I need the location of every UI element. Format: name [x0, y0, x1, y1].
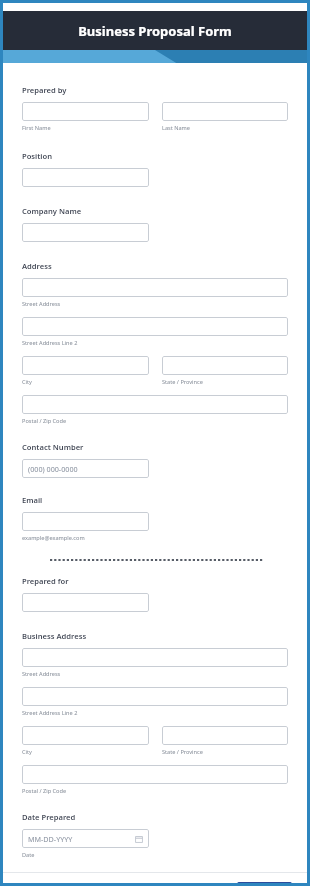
staticText: Address [22, 261, 52, 271]
staticText: State / Province [162, 378, 203, 386]
button[interactable] [22, 395, 288, 414]
staticText: First Name [22, 124, 51, 132]
button[interactable] [22, 648, 288, 667]
staticText: City [22, 748, 32, 756]
staticText: Date [22, 851, 35, 859]
staticText: Street Address [22, 670, 61, 678]
staticText: Last Name [162, 124, 190, 132]
staticText: Company Name [22, 206, 82, 216]
button[interactable] [22, 223, 149, 242]
button[interactable] [22, 168, 149, 187]
staticText: Position [22, 151, 53, 161]
staticText: example@example.com [22, 534, 85, 542]
button[interactable] [162, 356, 288, 375]
staticText: Email [22, 495, 43, 505]
button[interactable] [22, 593, 149, 612]
staticText: Postal / Zip Code [22, 787, 67, 795]
staticText: Next [254, 882, 275, 886]
staticText: (000) 000-0000 [28, 464, 78, 474]
staticText: Business Address [22, 631, 87, 641]
button[interactable]: MM-DD-YYYY [22, 829, 149, 848]
button[interactable]: (000) 000-0000 [22, 459, 149, 478]
staticText: Postal / Zip Code [22, 417, 67, 425]
button[interactable]: Next [237, 882, 292, 886]
button[interactable] [22, 278, 288, 297]
staticText: Prepared by [22, 85, 67, 95]
button[interactable] [162, 102, 288, 121]
staticText: Date Prepared [22, 812, 76, 822]
staticText: City [22, 378, 32, 386]
staticText: Street Address [22, 300, 61, 308]
button[interactable] [22, 687, 288, 706]
staticText: Business Proposal Form [78, 22, 232, 40]
staticText: Prepared for [22, 576, 69, 586]
button[interactable] [22, 726, 149, 745]
staticText: Contact Number [22, 442, 84, 452]
staticText: MM-DD-YYYY [28, 834, 73, 844]
button[interactable] [22, 102, 149, 121]
staticText: State / Province [162, 748, 203, 756]
button[interactable] [22, 765, 288, 784]
button[interactable] [22, 512, 149, 531]
staticText: Street Address Line 2 [22, 339, 78, 347]
staticText: Street Address Line 2 [22, 709, 78, 717]
button[interactable] [162, 726, 288, 745]
button[interactable] [22, 356, 149, 375]
button[interactable] [22, 317, 288, 336]
